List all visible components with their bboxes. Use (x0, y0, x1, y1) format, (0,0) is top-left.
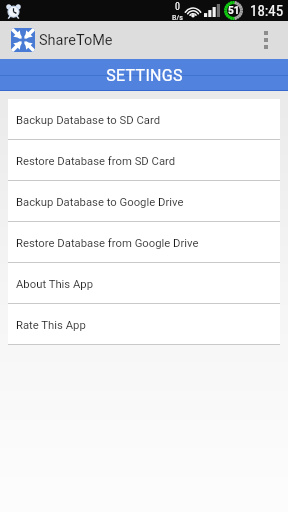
button[interactable]: Restore Database from Google Drive (8, 222, 280, 262)
staticText: SETTINGS (106, 66, 183, 85)
button[interactable]: More options (247, 21, 285, 59)
button[interactable]: SETTINGS (0, 59, 288, 91)
staticText: ShareToMe (39, 32, 113, 49)
staticText: Rate This App (16, 319, 86, 332)
button[interactable]: Backup Database to SD Card (8, 99, 280, 139)
staticText: Backup Database to Google Drive (16, 196, 184, 209)
staticText: 0 (175, 1, 180, 13)
button[interactable]: Rate This App (8, 304, 280, 344)
staticText: Restore Database from Google Drive (16, 237, 199, 250)
staticText: Backup Database to SD Card (16, 114, 161, 127)
button[interactable]: Restore Database from SD Card (8, 140, 280, 180)
staticText: About This App (16, 278, 94, 291)
button[interactable]: About This App (8, 263, 280, 303)
staticText: Restore Database from SD Card (16, 155, 176, 168)
staticText: B/s (172, 13, 183, 20)
staticText: 51 (228, 5, 240, 17)
button[interactable]: Backup Database to Google Drive (8, 181, 280, 221)
staticText: 18:45 (250, 2, 284, 20)
